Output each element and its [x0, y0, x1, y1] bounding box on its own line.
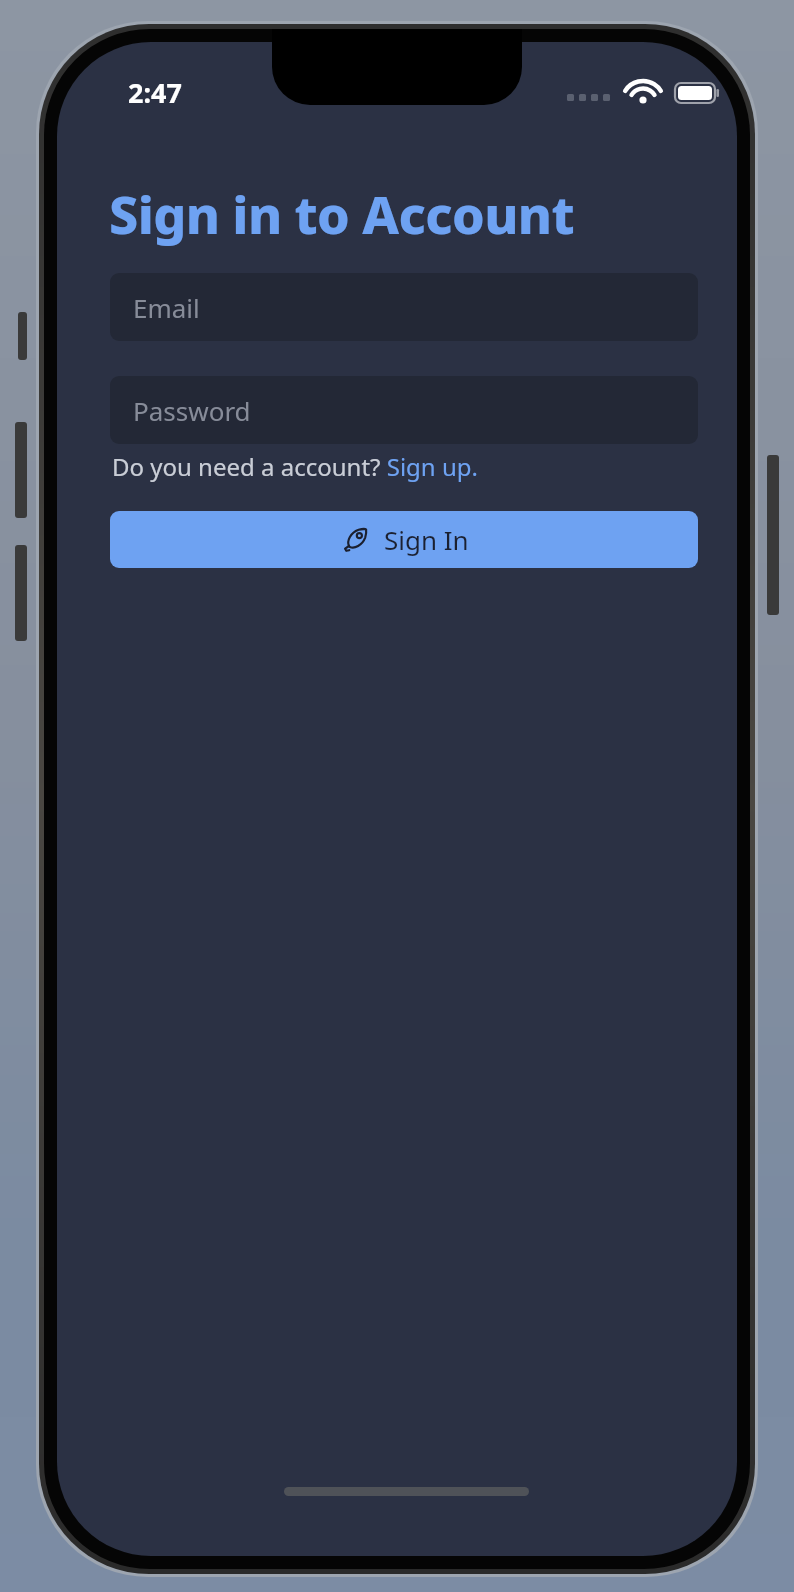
button[interactable]: Rocket [110, 511, 698, 568]
staticText: Password [133, 393, 251, 428]
button[interactable]: Email [110, 273, 698, 341]
staticText: Sign in to Account [109, 178, 575, 249]
button[interactable]: Do you need a account? Sign up. [112, 450, 478, 483]
staticText: Do you need a account? Sign up. [112, 450, 478, 483]
staticText: Email [133, 290, 200, 325]
button[interactable]: Password [110, 376, 698, 444]
staticText: 2:47 [128, 74, 182, 111]
staticText: Sign In [384, 522, 469, 557]
other: Rocket [340, 525, 370, 555]
